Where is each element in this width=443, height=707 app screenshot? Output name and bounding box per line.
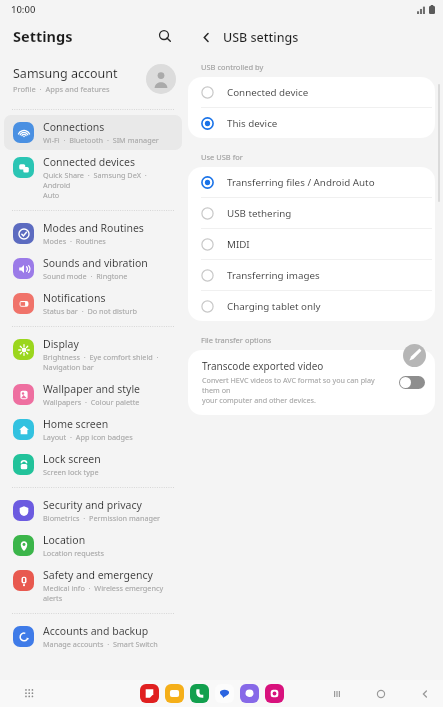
staticText: 10:00 — [11, 3, 36, 16]
staticText: Accounts and backup — [43, 624, 149, 638]
staticText: Transcode exported video — [202, 359, 324, 373]
button[interactable]: Connections — [4, 115, 182, 150]
staticText: Location requests — [43, 548, 104, 558]
staticText: Sounds and vibration — [43, 256, 148, 270]
staticText: Charging tablet only — [227, 300, 321, 313]
button[interactable]: Samsung account — [0, 54, 186, 104]
button[interactable]: Security and privacy — [4, 493, 182, 528]
staticText: Wallpapers · Colour palette — [43, 397, 140, 407]
staticText: Convert HEVC videos to AVC format so you… — [202, 375, 393, 405]
button[interactable]: internet — [240, 684, 259, 703]
button[interactable]: Safety and emergency — [4, 563, 182, 608]
button[interactable]: Location — [4, 528, 182, 563]
staticText: Lock screen — [43, 452, 101, 466]
button[interactable]: Connected devices — [4, 150, 182, 205]
staticText: Connections — [43, 120, 105, 134]
button[interactable]: Sounds and vibration — [4, 251, 182, 286]
staticText: Location — [43, 533, 86, 547]
button[interactable]: folder — [165, 684, 184, 703]
button[interactable]: Connected device — [188, 77, 435, 107]
button[interactable]: Wallpaper and style — [4, 377, 182, 412]
button[interactable]: MIDI — [188, 229, 435, 259]
staticText: USB tethering — [227, 207, 292, 220]
button[interactable]: msg — [215, 684, 234, 703]
button[interactable]: Back — [195, 26, 217, 48]
button[interactable]: Notifications — [4, 286, 182, 321]
button[interactable]: Display — [4, 332, 182, 377]
button[interactable]: Transcode exported video — [399, 376, 425, 389]
staticText: This device — [227, 117, 278, 130]
button[interactable]: Transferring files / Android Auto — [188, 167, 435, 197]
staticText: Wallpaper and style — [43, 382, 141, 396]
staticText: Screen lock type — [43, 467, 99, 477]
staticText: Manage accounts · Smart Switch — [43, 639, 158, 649]
button[interactable]: This device — [188, 108, 435, 138]
button[interactable]: Home — [369, 682, 393, 706]
staticText: Quick Share · Samsung DeX · Android Auto — [43, 170, 176, 200]
staticText: Connected device — [227, 86, 309, 99]
staticText: Brightness · Eye comfort shield · Naviga… — [43, 352, 159, 372]
staticText: Home screen — [43, 417, 109, 431]
staticText: Use USB for — [201, 152, 243, 162]
staticText: Wi-Fi · Bluetooth · SIM manager — [43, 135, 159, 145]
button[interactable]: USB tethering — [188, 198, 435, 228]
button[interactable]: flip — [140, 684, 159, 703]
staticText: Layout · App icon badges — [43, 432, 133, 442]
button[interactable]: Charging tablet only — [188, 291, 435, 321]
staticText: USB settings — [223, 29, 299, 46]
staticText: Modes · Routines — [43, 236, 106, 246]
button[interactable]: gallery — [265, 684, 284, 703]
staticText: Samsung account — [13, 65, 118, 82]
staticText: Status bar · Do not disturb — [43, 306, 138, 316]
staticText: Security and privacy — [43, 498, 142, 512]
staticText: Modes and Routines — [43, 221, 144, 235]
staticText: Medical info · Wireless emergency alerts — [43, 583, 176, 603]
button[interactable]: Lock screen — [4, 447, 182, 482]
button[interactable]: Accounts and backup — [4, 619, 182, 654]
staticText: Transferring images — [227, 269, 320, 282]
button[interactable]: Home screen — [4, 412, 182, 447]
staticText: Display — [43, 337, 79, 351]
staticText: Profile · Apps and features — [13, 84, 110, 94]
staticText: Connected devices — [43, 155, 136, 169]
staticText: Settings — [13, 26, 73, 46]
button[interactable]: Modes and Routines — [4, 216, 182, 251]
staticText: Safety and emergency — [43, 568, 153, 582]
staticText: Notifications — [43, 291, 106, 305]
button[interactable]: Recents — [325, 682, 349, 706]
staticText: Biometrics · Permission manager — [43, 513, 161, 523]
button[interactable]: phone — [190, 684, 209, 703]
staticText: File transfer options — [201, 335, 272, 345]
staticText: Transferring files / Android Auto — [227, 176, 375, 189]
button[interactable]: Apps — [20, 684, 40, 704]
staticText: MIDI — [227, 238, 250, 251]
staticText: USB controlled by — [201, 62, 264, 72]
staticText: Sound mode · Ringtone — [43, 271, 128, 281]
button[interactable]: Transferring images — [188, 260, 435, 290]
button[interactable]: Transcode exported video — [188, 350, 435, 415]
button[interactable]: Search — [152, 23, 178, 49]
button[interactable]: Back — [413, 682, 437, 706]
